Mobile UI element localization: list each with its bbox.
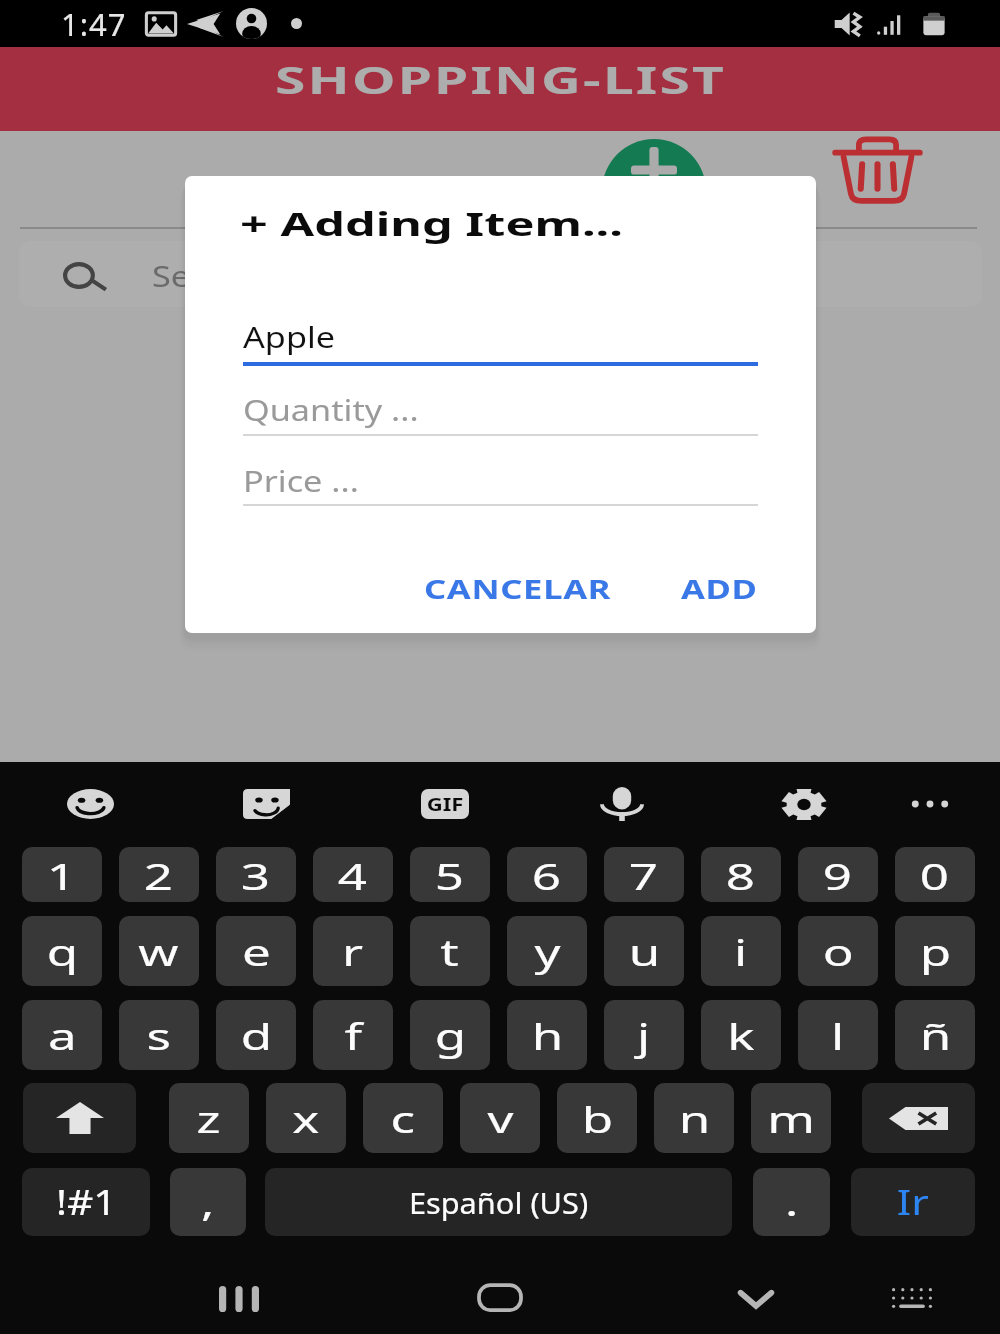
staticText: + Adding Item... [240, 201, 623, 246]
button[interactable]: 8 [701, 847, 781, 902]
button[interactable]: k [701, 1000, 781, 1070]
staticText: 2 [144, 850, 174, 900]
staticText: s [147, 1010, 171, 1060]
staticText: n [679, 1093, 710, 1143]
staticText: l [831, 1010, 845, 1060]
button[interactable]: 4 [313, 847, 393, 902]
staticText: 6 [532, 850, 562, 900]
staticText: i [734, 926, 748, 976]
button[interactable]: r [313, 916, 393, 986]
button[interactable]: o [798, 916, 878, 986]
button[interactable]: e [216, 916, 296, 986]
button[interactable]: Español (US) [265, 1168, 732, 1236]
staticText: c [391, 1093, 415, 1143]
button[interactable]: Shift [23, 1083, 136, 1153]
staticText: o [823, 926, 854, 976]
staticText: f [344, 1010, 362, 1060]
button[interactable]: 5 [410, 847, 490, 902]
button[interactable]: More options [898, 772, 962, 836]
staticText: CANCELAR [424, 571, 611, 606]
staticText: 4 [338, 850, 368, 900]
button[interactable]: GIF [413, 772, 477, 836]
button[interactable]: 1 [22, 847, 102, 902]
staticText: !#1 [56, 1179, 117, 1225]
button[interactable]: z [169, 1083, 249, 1153]
button[interactable]: Ir [851, 1168, 975, 1236]
button[interactable]: Stickers [234, 772, 298, 836]
staticText: k [727, 1010, 755, 1060]
button[interactable]: 9 [798, 847, 878, 902]
button[interactable]: Home [470, 1268, 530, 1328]
staticText: 0 [920, 850, 950, 900]
staticText: h [532, 1010, 563, 1060]
button[interactable]: b [557, 1083, 637, 1153]
button[interactable]: u [604, 916, 684, 986]
button[interactable]: Change keyboard [882, 1268, 942, 1328]
button[interactable]: x [266, 1083, 346, 1153]
button[interactable]: Backspace [862, 1083, 975, 1153]
button[interactable]: Delete all [820, 131, 935, 211]
button[interactable]: Hide keyboard [726, 1268, 786, 1328]
staticText: w [138, 926, 180, 976]
button[interactable]: g [410, 1000, 490, 1070]
staticText: , [201, 1178, 215, 1227]
staticText: t [440, 926, 460, 976]
button[interactable]: , [170, 1168, 246, 1236]
button[interactable]: c [363, 1083, 443, 1153]
button[interactable]: 3 [216, 847, 296, 902]
button[interactable]: Search ... [19, 241, 982, 307]
staticText: y [534, 926, 561, 976]
button[interactable]: Settings [772, 772, 836, 836]
staticText: 1:47 [61, 3, 127, 45]
button[interactable]: n [654, 1083, 734, 1153]
button[interactable]: . [753, 1168, 830, 1236]
staticText: . [785, 1178, 799, 1227]
button[interactable]: t [410, 916, 490, 986]
button[interactable]: v [460, 1083, 540, 1153]
button[interactable]: ADD [681, 571, 739, 606]
staticText: b [582, 1093, 613, 1143]
button[interactable]: Recents [205, 1269, 265, 1329]
staticText: Apple [243, 317, 336, 356]
staticText: ADD [681, 571, 758, 606]
button[interactable]: f [313, 1000, 393, 1070]
button[interactable]: a [22, 1000, 102, 1070]
staticText: a [48, 1010, 77, 1060]
staticText: z [197, 1093, 221, 1143]
button[interactable]: 6 [507, 847, 587, 902]
staticText: q [47, 926, 78, 976]
staticText: g [435, 1010, 466, 1060]
button[interactable]: 7 [604, 847, 684, 902]
staticText: u [629, 926, 660, 976]
button[interactable]: Voice input [590, 772, 654, 836]
staticText: j [637, 1010, 651, 1060]
staticText: 1 [47, 850, 77, 900]
button[interactable]: w [119, 916, 199, 986]
button[interactable]: Add item [602, 139, 706, 243]
button[interactable]: q [22, 916, 102, 986]
button[interactable]: p [895, 916, 975, 986]
staticText: 7 [629, 850, 659, 900]
button[interactable]: 0 [895, 847, 975, 902]
button[interactable]: 2 [119, 847, 199, 902]
button[interactable]: CANCELAR [424, 571, 565, 606]
button[interactable]: i [701, 916, 781, 986]
button[interactable]: Emoji [58, 772, 122, 836]
button[interactable]: j [604, 1000, 684, 1070]
button[interactable]: y [507, 916, 587, 986]
staticText: 8 [726, 850, 756, 900]
button[interactable]: m [751, 1083, 831, 1153]
staticText: e [242, 926, 271, 976]
staticText: r [342, 926, 364, 976]
button[interactable]: s [119, 1000, 199, 1070]
button[interactable]: h [507, 1000, 587, 1070]
button[interactable]: !#1 [22, 1168, 150, 1236]
button[interactable]: d [216, 1000, 296, 1070]
staticText: x [292, 1093, 320, 1143]
staticText: Price ... [243, 461, 360, 500]
staticText: v [487, 1093, 514, 1143]
staticText: GIF [427, 793, 464, 816]
button[interactable]: l [798, 1000, 878, 1070]
button[interactable]: ñ [895, 1000, 975, 1070]
staticText: d [241, 1010, 272, 1060]
